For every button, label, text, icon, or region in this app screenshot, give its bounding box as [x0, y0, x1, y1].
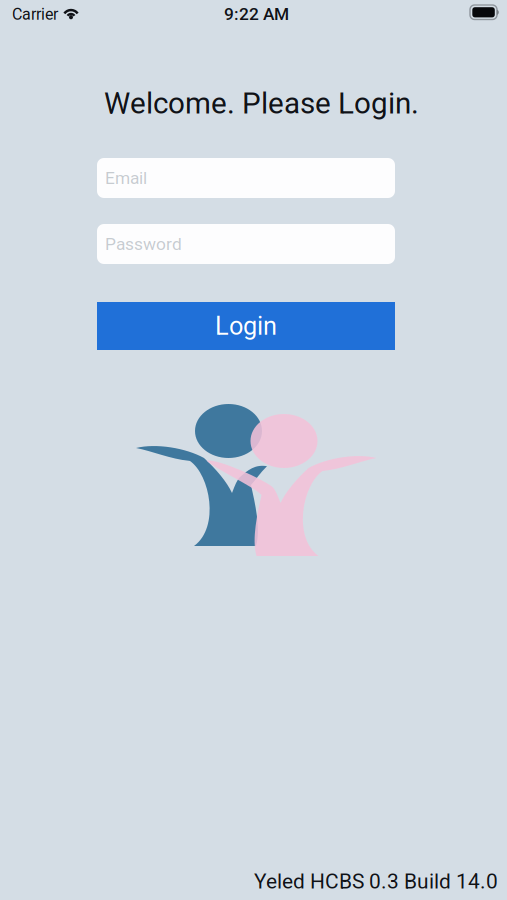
button[interactable]: Email — [97, 158, 395, 198]
button[interactable]: Password — [97, 224, 395, 264]
staticText: Email — [105, 168, 147, 188]
button[interactable]: Login — [97, 302, 395, 350]
staticText: Carrier — [12, 5, 58, 24]
staticText: Login — [215, 311, 277, 341]
staticText: Yeled HCBS 0.3 Build 14.0 — [254, 869, 498, 893]
staticText: 9:22 AM — [224, 4, 289, 24]
staticText: Password — [105, 234, 182, 254]
staticText: Welcome. Please Login. — [104, 86, 419, 121]
